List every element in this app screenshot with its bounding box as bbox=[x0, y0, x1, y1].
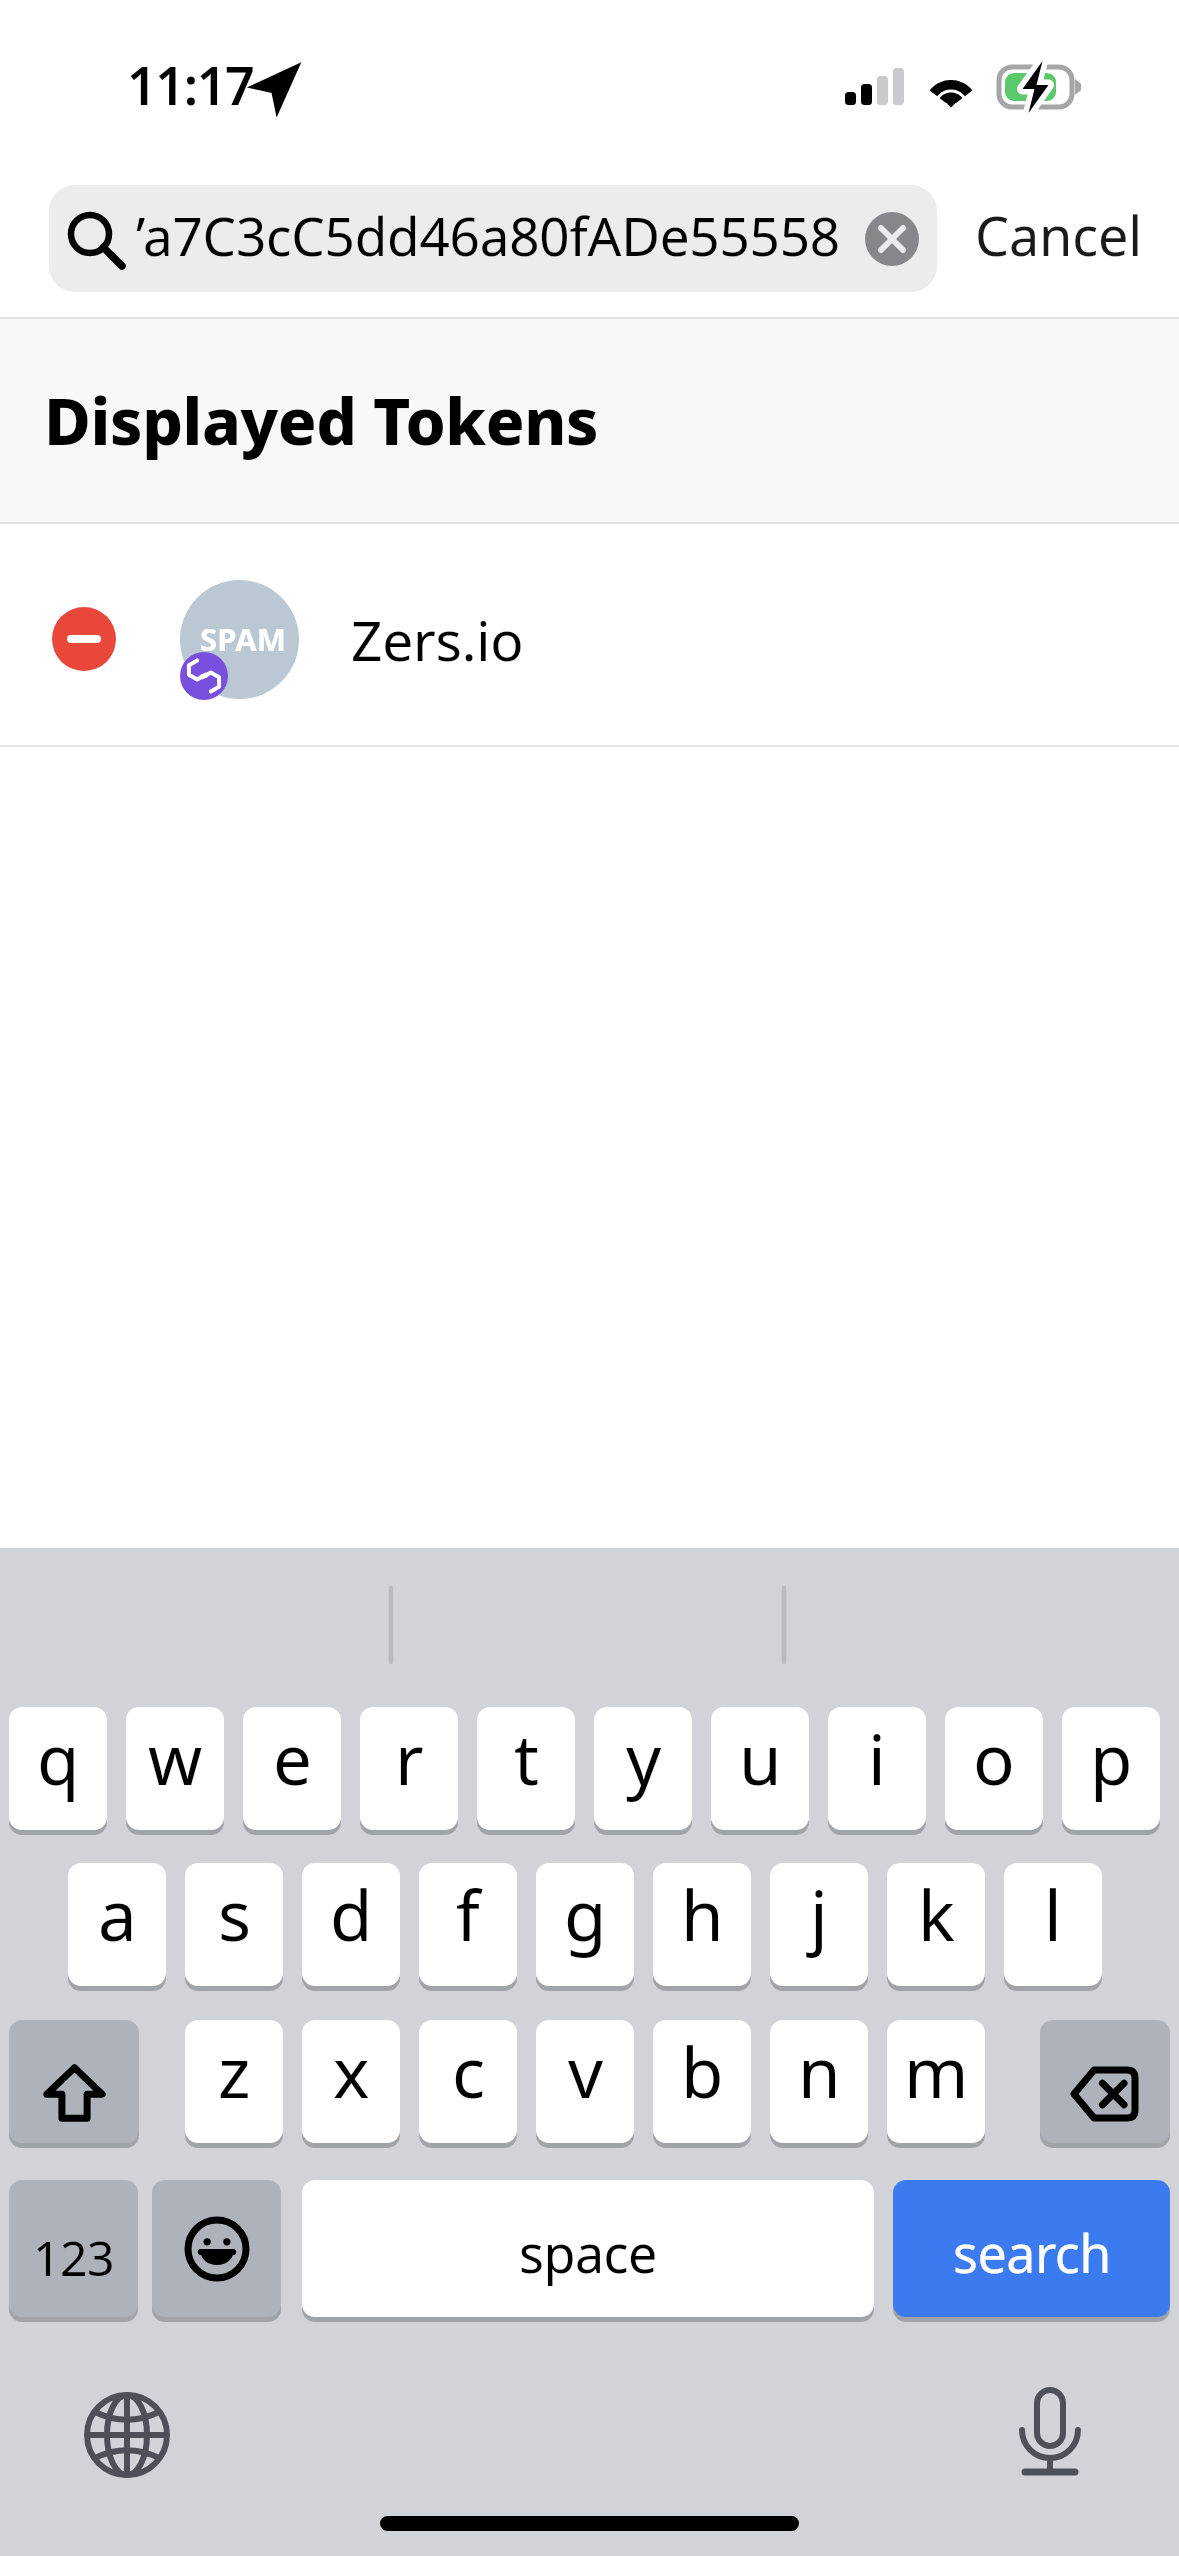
button[interactable]: Dictation bbox=[1017, 2382, 1083, 2482]
button[interactable]: Change keyboard language bbox=[85, 2393, 169, 2477]
button[interactable]: n bbox=[770, 2020, 868, 2143]
staticText: x bbox=[333, 2024, 370, 2118]
button[interactable]: u bbox=[711, 1707, 809, 1830]
button[interactable]: r bbox=[360, 1707, 458, 1830]
staticText: a bbox=[98, 1867, 137, 1961]
button[interactable]: q bbox=[9, 1707, 107, 1830]
staticText: y bbox=[626, 1711, 661, 1805]
staticText: g bbox=[564, 1867, 606, 1961]
staticText: ’a7C3cC5dd46a80fADe55558 bbox=[136, 199, 840, 271]
staticText: m bbox=[904, 2024, 969, 2118]
staticText: s bbox=[218, 1867, 251, 1961]
staticText: t bbox=[514, 1711, 539, 1805]
button[interactable]: Emoji bbox=[152, 2180, 281, 2317]
button[interactable]: s bbox=[185, 1863, 283, 1986]
button[interactable]: a bbox=[68, 1863, 166, 1986]
button[interactable]: l bbox=[1004, 1863, 1102, 1986]
staticText: 123 bbox=[33, 2225, 114, 2290]
button[interactable]: m bbox=[887, 2020, 985, 2143]
button[interactable]: Remove token bbox=[0, 524, 1179, 747]
button[interactable]: v bbox=[536, 2020, 634, 2143]
button[interactable]: search bbox=[893, 2180, 1170, 2317]
button[interactable]: t bbox=[477, 1707, 575, 1830]
button[interactable]: z bbox=[185, 2020, 283, 2143]
button[interactable]: c bbox=[419, 2020, 517, 2143]
button[interactable]: 123 bbox=[9, 2180, 138, 2317]
button[interactable]: ’a7C3cC5dd46a80fADe55558 bbox=[49, 185, 937, 292]
staticText: space bbox=[519, 2217, 657, 2288]
button[interactable]: f bbox=[419, 1863, 517, 1986]
staticText: w bbox=[148, 1711, 202, 1805]
button[interactable]: w bbox=[126, 1707, 224, 1830]
button[interactable]: g bbox=[536, 1863, 634, 1986]
staticText: d bbox=[330, 1867, 372, 1961]
staticText: c bbox=[452, 2024, 485, 2118]
staticText: j bbox=[810, 1867, 828, 1961]
staticText: SPAM bbox=[200, 618, 287, 660]
staticText: q bbox=[37, 1711, 79, 1805]
staticText: z bbox=[218, 2024, 250, 2118]
staticText: e bbox=[273, 1711, 312, 1805]
staticText: l bbox=[1044, 1867, 1062, 1961]
button[interactable]: x bbox=[302, 2020, 400, 2143]
button[interactable]: p bbox=[1062, 1707, 1160, 1830]
staticText: Displayed Tokens bbox=[44, 377, 599, 464]
button[interactable]: e bbox=[243, 1707, 341, 1830]
button[interactable]: i bbox=[828, 1707, 926, 1830]
staticText: search bbox=[953, 2217, 1111, 2288]
staticText: h bbox=[681, 1867, 724, 1961]
button[interactable]: k bbox=[887, 1863, 985, 1986]
button[interactable]: Clear search text bbox=[865, 212, 919, 266]
button[interactable]: Shift bbox=[9, 2020, 139, 2143]
button[interactable]: Remove token bbox=[52, 607, 116, 671]
button[interactable]: b bbox=[653, 2020, 751, 2143]
staticText: p bbox=[1090, 1711, 1132, 1805]
button[interactable]: j bbox=[770, 1863, 868, 1986]
staticText: i bbox=[868, 1711, 886, 1805]
button[interactable]: y bbox=[594, 1707, 692, 1830]
staticText: n bbox=[798, 2024, 841, 2118]
staticText: b bbox=[681, 2024, 723, 2118]
button[interactable]: d bbox=[302, 1863, 400, 1986]
staticText: u bbox=[739, 1711, 782, 1805]
button[interactable]: space bbox=[302, 2180, 874, 2317]
button[interactable]: o bbox=[945, 1707, 1043, 1830]
staticText: Cancel bbox=[975, 198, 1142, 272]
staticText: f bbox=[456, 1867, 480, 1961]
staticText: Zers.io bbox=[351, 602, 524, 677]
staticText: o bbox=[973, 1711, 1015, 1805]
button[interactable]: h bbox=[653, 1863, 751, 1986]
staticText: r bbox=[395, 1711, 423, 1805]
button[interactable]: Cancel bbox=[957, 186, 1160, 284]
staticText: v bbox=[568, 2024, 603, 2118]
staticText: k bbox=[918, 1867, 955, 1961]
button[interactable]: Delete bbox=[1040, 2020, 1170, 2143]
staticText: 11:17 bbox=[127, 49, 254, 120]
